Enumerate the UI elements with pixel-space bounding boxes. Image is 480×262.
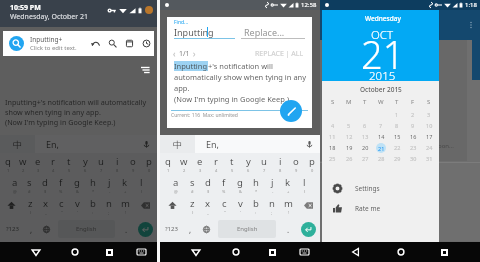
button[interactable]: j xyxy=(264,174,280,195)
button[interactable]: . xyxy=(280,216,296,242)
button[interactable]: m xyxy=(117,195,133,216)
button[interactable]: Edit xyxy=(280,100,302,122)
button[interactable]: b xyxy=(248,195,264,216)
button[interactable]: e xyxy=(30,153,45,174)
button[interactable]: r xyxy=(208,153,224,174)
button[interactable]: l xyxy=(133,174,149,195)
button[interactable]: c xyxy=(53,195,69,216)
button[interactable]: n xyxy=(101,195,117,216)
button[interactable]: t xyxy=(224,153,240,174)
button[interactable]: g xyxy=(69,174,85,195)
button[interactable]: d xyxy=(200,174,216,195)
button[interactable]: p xyxy=(304,153,320,174)
button[interactable]: Delete xyxy=(296,195,320,216)
button[interactable]: o xyxy=(125,153,141,174)
button[interactable]: Settings xyxy=(322,178,439,198)
button[interactable]: English xyxy=(58,220,115,238)
button[interactable]: Home xyxy=(228,244,244,260)
staticText: h xyxy=(90,176,96,189)
button[interactable]: a xyxy=(7,174,22,195)
button[interactable]: q xyxy=(0,153,15,174)
button[interactable]: i xyxy=(109,153,125,174)
button[interactable]: , xyxy=(183,216,198,242)
button[interactable]: a xyxy=(168,174,184,195)
button[interactable]: Enter xyxy=(301,222,316,237)
button[interactable]: More options xyxy=(467,21,475,29)
button[interactable]: 中 xyxy=(160,135,195,153)
button[interactable]: n xyxy=(264,195,280,216)
button[interactable]: English xyxy=(218,220,276,238)
button[interactable]: l xyxy=(296,174,312,195)
button[interactable]: ?123 xyxy=(0,216,24,242)
button[interactable]: p xyxy=(141,153,157,174)
button[interactable]: y xyxy=(240,153,256,174)
button[interactable]: u xyxy=(256,153,272,174)
button[interactable]: f xyxy=(53,174,69,195)
button[interactable]: h xyxy=(248,174,264,195)
button[interactable]: w xyxy=(176,153,192,174)
button[interactable]: Back xyxy=(348,244,364,260)
button[interactable]: Hide keyboard xyxy=(296,244,312,260)
button[interactable]: Recents xyxy=(101,244,117,260)
button[interactable]: Action xyxy=(91,39,100,48)
button[interactable]: Shift xyxy=(0,195,23,216)
button[interactable]: o xyxy=(288,153,304,174)
button[interactable]: z xyxy=(184,195,200,216)
button[interactable]: f xyxy=(216,174,232,195)
button[interactable]: s xyxy=(184,174,200,195)
button[interactable]: Home xyxy=(67,244,83,260)
button[interactable]: z xyxy=(23,195,38,216)
staticText: v xyxy=(238,197,243,210)
button[interactable]: d xyxy=(37,174,53,195)
button[interactable]: Action xyxy=(125,39,134,48)
button[interactable]: Rate me xyxy=(322,198,439,218)
button[interactable]: j xyxy=(101,174,117,195)
button[interactable]: t xyxy=(61,153,77,174)
button[interactable]: k xyxy=(117,174,133,195)
button[interactable]: x xyxy=(200,195,216,216)
button[interactable]: u xyxy=(93,153,109,174)
button[interactable]: y xyxy=(77,153,93,174)
button[interactable]: Action xyxy=(142,39,151,48)
button[interactable]: b xyxy=(85,195,101,216)
button[interactable]: v xyxy=(69,195,85,216)
staticText: 29 xyxy=(394,155,401,162)
button[interactable]: m xyxy=(280,195,296,216)
button[interactable]: r xyxy=(45,153,61,174)
button[interactable]: Language xyxy=(39,216,54,242)
button[interactable]: c xyxy=(216,195,232,216)
button[interactable]: Hide keyboard xyxy=(133,244,149,260)
button[interactable]: q xyxy=(160,153,176,174)
staticText: & xyxy=(239,189,242,194)
button[interactable]: Language xyxy=(198,216,214,242)
button[interactable]: 中 xyxy=(0,135,35,153)
button[interactable]: s xyxy=(22,174,37,195)
button[interactable]: e xyxy=(192,153,208,174)
button[interactable]: h xyxy=(85,174,101,195)
button[interactable]: g xyxy=(232,174,248,195)
button[interactable]: i xyxy=(272,153,288,174)
staticText: + xyxy=(287,189,290,194)
button[interactable]: Recents xyxy=(436,244,452,260)
button[interactable]: Recents xyxy=(264,244,280,260)
button[interactable]: Action xyxy=(108,39,117,48)
button[interactable]: Delete xyxy=(133,195,157,216)
button[interactable]: Inputting+ xyxy=(3,31,154,56)
button[interactable]: ?123 xyxy=(160,216,183,242)
button[interactable]: x xyxy=(38,195,53,216)
button[interactable]: Sort xyxy=(141,65,150,74)
button[interactable]: k xyxy=(280,174,296,195)
button[interactable]: Shift xyxy=(160,195,184,216)
button[interactable]: Back xyxy=(188,244,204,260)
staticText: 3 xyxy=(199,168,202,173)
button[interactable]: Voice input xyxy=(143,141,150,148)
button[interactable]: v xyxy=(232,195,248,216)
button[interactable]: Voice input xyxy=(306,141,313,148)
button[interactable]: Enter xyxy=(138,222,153,237)
button[interactable]: w xyxy=(15,153,30,174)
button[interactable]: Home xyxy=(393,244,409,260)
button[interactable]: Back xyxy=(28,244,44,260)
staticText: d xyxy=(205,176,211,189)
